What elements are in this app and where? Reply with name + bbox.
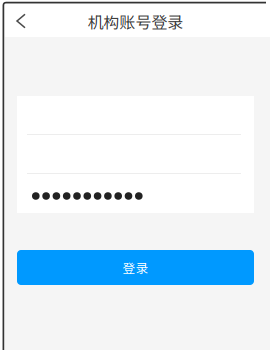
button[interactable]: Password (17, 174, 254, 213)
staticText: 登录 (122, 258, 148, 277)
button[interactable]: Back (5, 3, 39, 37)
button[interactable]: 登录 (17, 250, 254, 285)
staticText: 机构账号登录 (87, 10, 183, 33)
